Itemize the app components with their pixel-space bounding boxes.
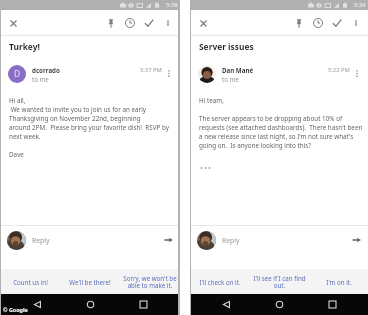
staticText: I'll check on it. <box>199 278 241 286</box>
staticText: Reply <box>32 236 50 245</box>
button[interactable]: Pin <box>289 13 308 32</box>
button[interactable]: Snooze <box>308 13 327 32</box>
staticText: I'm on it. <box>326 278 352 286</box>
staticText: 5:38 <box>166 1 178 9</box>
staticText: Dan Mané <box>222 66 254 74</box>
staticText: Server issues <box>199 41 254 52</box>
staticText: D <box>14 68 21 80</box>
staticText: I'll see if I can find out. <box>253 274 306 290</box>
button[interactable]: Recents <box>137 298 150 311</box>
staticText: Reply <box>222 236 240 245</box>
staticText: 5:37 PM <box>140 66 162 74</box>
button[interactable]: Snooze <box>120 13 139 32</box>
staticText: Hi team, <box>199 96 224 105</box>
staticText: Turkey! <box>9 41 40 52</box>
staticText: going on. Is anyone looking into this? <box>199 141 312 150</box>
button[interactable]: Reply <box>190 226 368 269</box>
staticText: around 2PM. Please bring your favorite d… <box>9 123 169 132</box>
button[interactable]: Send <box>352 236 361 244</box>
button[interactable]: Home <box>84 298 97 311</box>
staticText: We'll be there! <box>69 278 111 286</box>
button[interactable]: More options <box>346 13 365 32</box>
staticText: to me <box>32 75 49 83</box>
staticText: next week. <box>9 132 41 141</box>
staticText: © Google <box>3 306 28 313</box>
staticText: requests (see attached dashboards). Ther… <box>199 123 363 132</box>
button[interactable]: Home <box>273 298 286 311</box>
button[interactable]: Close <box>198 18 208 28</box>
staticText: dcorrado <box>32 66 60 74</box>
staticText: 5:24 <box>354 1 366 9</box>
button[interactable]: Back <box>220 298 233 311</box>
button[interactable]: Sorry, we won't be able to make it. <box>120 269 180 294</box>
staticText: Dave <box>9 150 24 159</box>
button[interactable]: We'll be there! <box>60 269 120 294</box>
staticText: Count us in! <box>13 278 48 286</box>
button[interactable]: More options <box>158 13 177 32</box>
staticText: a new release since last night, so I'm n… <box>199 132 354 141</box>
button[interactable]: Done <box>139 13 158 32</box>
staticText: The server appears to be dropping about … <box>199 114 343 123</box>
staticText: Hi all, <box>9 96 26 105</box>
button[interactable]: Back <box>31 298 44 311</box>
button[interactable]: Recents <box>326 298 339 311</box>
staticText: Thanksgiving on November 22nd, beginning <box>9 114 141 123</box>
button[interactable]: Count us in! <box>0 269 60 294</box>
button[interactable]: Pin <box>101 13 120 32</box>
button[interactable]: I'll check on it. <box>190 269 250 294</box>
staticText: Sorry, we won't be able to make it. <box>123 274 177 290</box>
button[interactable]: Reply <box>0 226 180 269</box>
button[interactable]: Send <box>164 236 173 244</box>
button[interactable]: Done <box>327 13 346 32</box>
staticText: 5:22 PM <box>328 66 350 74</box>
staticText: We wanted to invite you to join us for a… <box>9 105 146 114</box>
button[interactable]: Close <box>8 18 18 28</box>
button[interactable]: I'll see if I can find out. <box>250 269 309 294</box>
button[interactable]: More <box>164 65 173 81</box>
button[interactable]: I'm on it. <box>309 269 368 294</box>
staticText: to me <box>222 75 239 83</box>
button[interactable]: More <box>352 65 361 81</box>
